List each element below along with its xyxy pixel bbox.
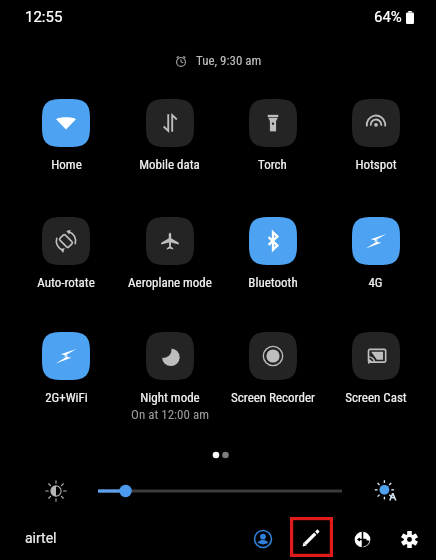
- staticText: 2G+WiFi: [45, 390, 88, 405]
- button[interactable]: Brightness: [38, 473, 74, 509]
- button[interactable]: Bluetooth: [221, 217, 324, 290]
- staticText: Torch: [258, 157, 287, 172]
- button[interactable]: Screen Cast: [324, 332, 427, 405]
- button[interactable]: Edit: [290, 517, 333, 557]
- staticText: 64%: [374, 8, 402, 26]
- staticText: Screen Cast: [345, 390, 407, 405]
- staticText: Home: [51, 157, 82, 172]
- button[interactable]: Hotspot: [324, 99, 427, 172]
- button[interactable]: [92, 473, 348, 509]
- button[interactable]: 2G+WiFi: [14, 332, 118, 405]
- staticText: 12:55: [25, 8, 63, 26]
- staticText: airtel: [25, 530, 57, 546]
- staticText: Night mode: [140, 390, 200, 405]
- button[interactable]: Mobile data: [118, 99, 221, 172]
- staticText: Auto-rotate: [37, 275, 95, 290]
- staticText: 4G: [368, 275, 383, 290]
- button[interactable]: Auto-rotate: [14, 217, 118, 290]
- staticText: Mobile data: [139, 157, 200, 172]
- button[interactable]: Aeroplane mode: [118, 217, 221, 290]
- staticText: Tue, 9:30 am: [196, 53, 262, 68]
- button[interactable]: Screen Recorder: [221, 332, 324, 405]
- button[interactable]: Account: [242, 518, 284, 560]
- staticText: Bluetooth: [248, 275, 298, 290]
- staticText: Screen Recorder: [231, 390, 315, 405]
- button[interactable]: Power: [341, 518, 383, 560]
- button[interactable]: Settings: [388, 518, 430, 560]
- button[interactable]: Home: [14, 99, 118, 172]
- button[interactable]: Night mode: [118, 332, 221, 422]
- button[interactable]: Auto brightness: [368, 473, 404, 509]
- staticText: Aeroplane mode: [128, 275, 212, 290]
- button[interactable]: Torch: [221, 99, 324, 172]
- button[interactable]: 4G: [324, 217, 427, 290]
- staticText: Hotspot: [355, 157, 397, 172]
- staticText: On at 12:00 am: [131, 407, 209, 422]
